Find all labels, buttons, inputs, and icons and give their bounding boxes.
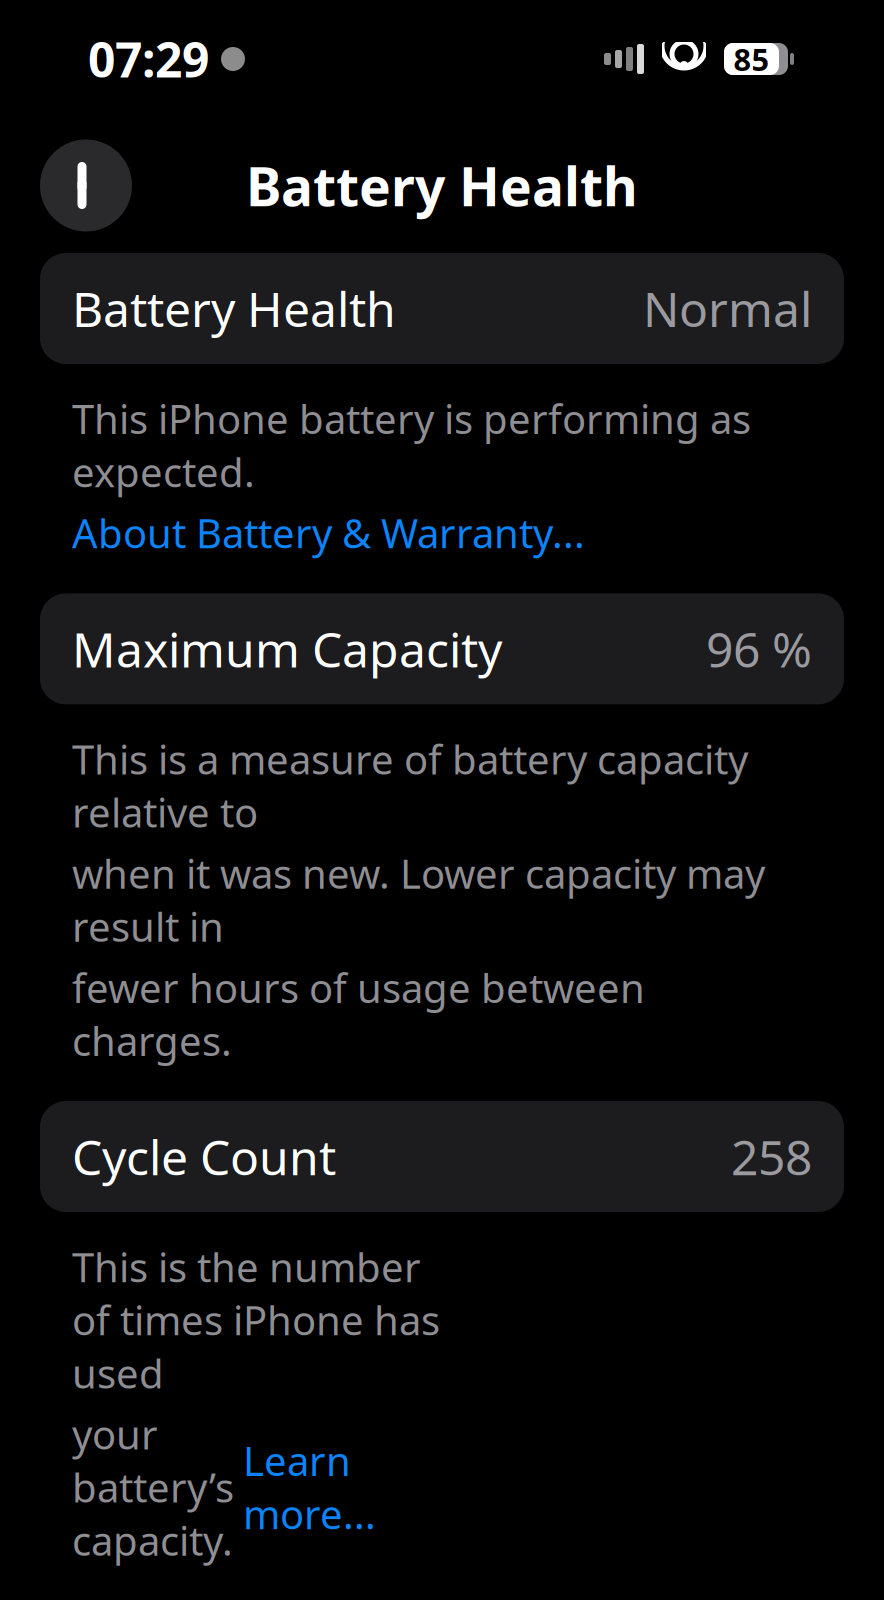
button[interactable]: Maximum Capacity	[40, 593, 844, 704]
staticText: 258	[731, 1125, 812, 1188]
staticText: fewer hours of usage between charges.	[72, 961, 645, 1067]
staticText: your battery’s capacity.	[72, 1407, 243, 1567]
staticText: This is the number of times iPhone has u…	[72, 1240, 440, 1399]
button[interactable]: About Battery & Warranty...	[72, 506, 585, 559]
staticText: Cycle Count	[72, 1125, 336, 1188]
staticText: Battery Health	[246, 150, 638, 221]
staticText: 96 %	[706, 617, 812, 681]
button[interactable]: Battery Health	[40, 253, 844, 364]
staticText: This is a measure of battery capacity re…	[72, 732, 748, 839]
staticText: when it was new. Lower capacity may resu…	[72, 847, 765, 953]
staticText: Battery Health	[72, 277, 396, 340]
staticText: 07:29	[88, 27, 209, 91]
button[interactable]: Cycle Count	[40, 1101, 844, 1212]
button[interactable]: Learn more...	[243, 1434, 376, 1540]
staticText: Normal	[643, 277, 812, 340]
button[interactable]: Back	[40, 139, 132, 231]
staticText: Learn more...	[243, 1434, 376, 1540]
staticText: 85	[733, 39, 769, 79]
staticText: About Battery & Warranty...	[72, 506, 585, 559]
staticText: Maximum Capacity	[72, 617, 502, 681]
staticText: This iPhone battery is performing as exp…	[72, 392, 751, 498]
